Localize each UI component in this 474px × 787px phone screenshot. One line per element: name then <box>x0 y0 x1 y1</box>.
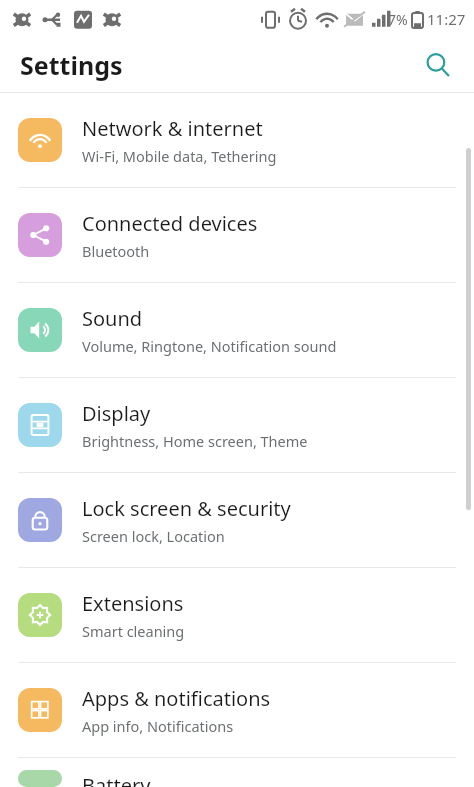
button[interactable]: Apps & notifications <box>0 663 474 757</box>
staticText: Connected devices <box>82 210 258 237</box>
staticText: 17% <box>380 10 408 29</box>
button[interactable]: Sound <box>0 283 474 377</box>
staticText: Screen lock, Location <box>82 526 225 546</box>
button[interactable]: Connected devices <box>0 188 474 282</box>
staticText: Smart cleaning <box>82 621 185 641</box>
staticText: Bluetooth <box>82 241 150 261</box>
staticText: Display <box>82 400 151 427</box>
staticText: Extensions <box>82 590 184 617</box>
button[interactable]: Lock screen & security <box>0 473 474 567</box>
staticText: Wi-Fi, Mobile data, Tethering <box>82 146 277 166</box>
staticText: Network & internet <box>82 115 263 142</box>
button[interactable]: Display <box>0 378 474 472</box>
button[interactable]: Extensions <box>0 568 474 662</box>
staticText: Apps & notifications <box>82 685 271 712</box>
staticText: App info, Notifications <box>82 716 234 736</box>
staticText: Sound <box>82 305 143 332</box>
staticText: Brightness, Home screen, Theme <box>82 431 308 451</box>
staticText: Battery <box>82 772 151 787</box>
button[interactable]: Search <box>416 43 460 87</box>
button[interactable]: Battery <box>0 758 474 787</box>
staticText: 11:27 <box>427 9 466 29</box>
staticText: Volume, Ringtone, Notification sound <box>82 336 337 356</box>
staticText: Settings <box>20 48 123 82</box>
staticText: Lock screen & security <box>82 495 291 522</box>
button[interactable]: Network & internet <box>0 93 474 187</box>
